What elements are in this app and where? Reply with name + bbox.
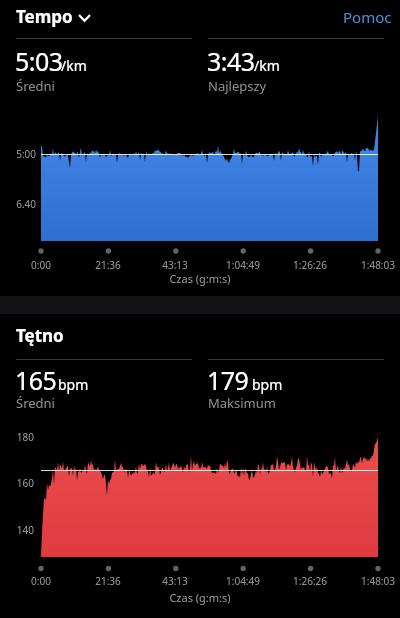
staticText: 6.40 — [0, 197, 36, 211]
staticText: Maksimum — [208, 394, 276, 412]
staticText: 1:48:03 — [348, 574, 400, 588]
staticText: 1:04:49 — [213, 574, 273, 588]
staticText: Tętno — [16, 324, 64, 347]
button[interactable]: Tempo — [10, 2, 98, 28]
staticText: Średni — [16, 77, 55, 95]
staticText: 0:00 — [11, 258, 71, 272]
staticText: 140 — [0, 523, 34, 537]
staticText: 5:03 — [15, 44, 63, 78]
staticText: bpm — [58, 375, 89, 394]
staticText: 160 — [0, 476, 34, 490]
button[interactable]: Pomoc — [343, 7, 392, 27]
staticText: 43:13 — [145, 258, 205, 272]
staticText: 43:13 — [145, 574, 205, 588]
staticText: /km — [61, 56, 87, 75]
staticText: /km — [254, 56, 280, 75]
staticText: 21:36 — [78, 258, 138, 272]
staticText: 1:26:26 — [280, 258, 340, 272]
staticText: 3:43 — [207, 44, 255, 78]
staticText: 5:00 — [0, 147, 36, 161]
staticText: Najlepszy — [208, 77, 267, 95]
staticText: 165 — [15, 363, 57, 397]
staticText: Średni — [16, 394, 55, 412]
staticText: 1:48:03 — [348, 258, 400, 272]
staticText: 179 — [207, 363, 249, 397]
staticText: 180 — [0, 430, 34, 444]
staticText: Czas (g:m:s) — [0, 271, 400, 286]
staticText: 21:36 — [78, 574, 138, 588]
staticText: bpm — [252, 375, 283, 394]
staticText: 0:00 — [11, 574, 71, 588]
staticText: Tempo — [16, 5, 73, 28]
staticText: 1:26:26 — [280, 574, 340, 588]
staticText: 1:04:49 — [213, 258, 273, 272]
staticText: Czas (g:m:s) — [0, 590, 400, 605]
